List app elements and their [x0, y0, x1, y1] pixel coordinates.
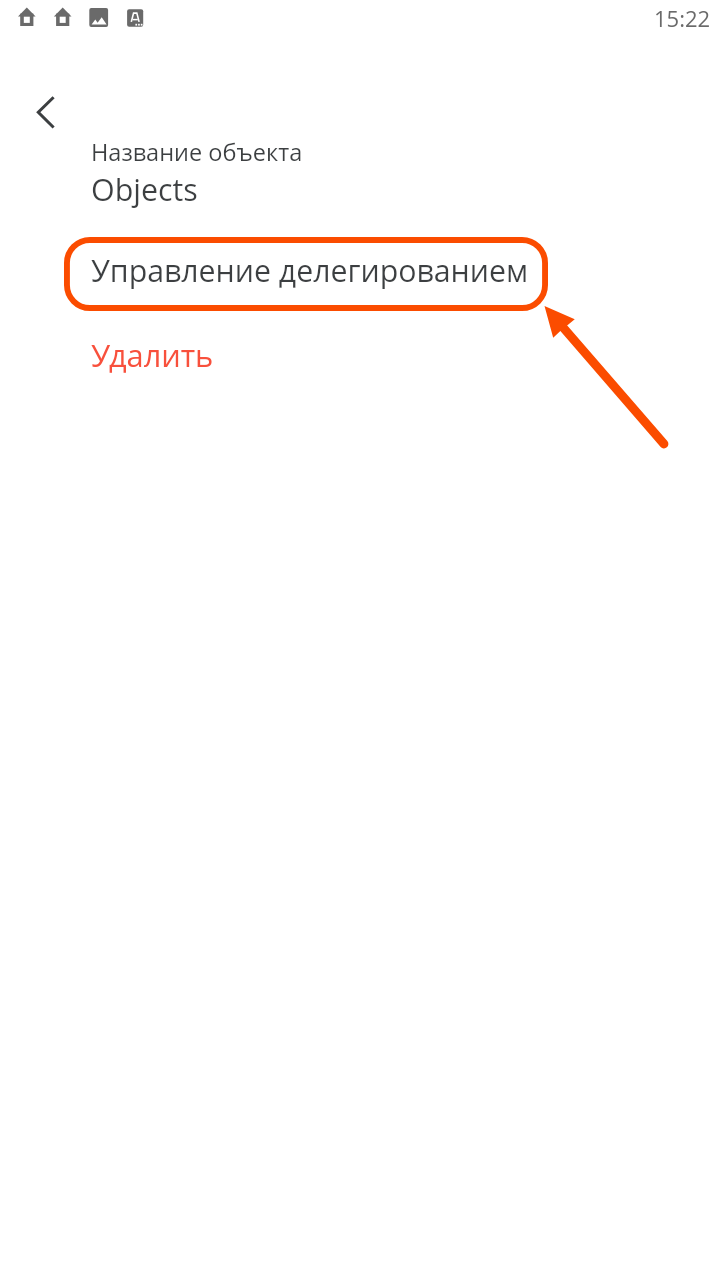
staticText: Удалить [91, 334, 214, 376]
staticText: Управление делегированием [91, 250, 529, 291]
staticText: 15:22 [654, 3, 711, 33]
button[interactable]: Управление делегированием [64, 237, 548, 311]
staticText: Objects [91, 169, 198, 210]
button[interactable]: Back [14, 80, 78, 144]
staticText: Название объекта [91, 136, 303, 168]
button[interactable]: Удалить [64, 321, 248, 383]
